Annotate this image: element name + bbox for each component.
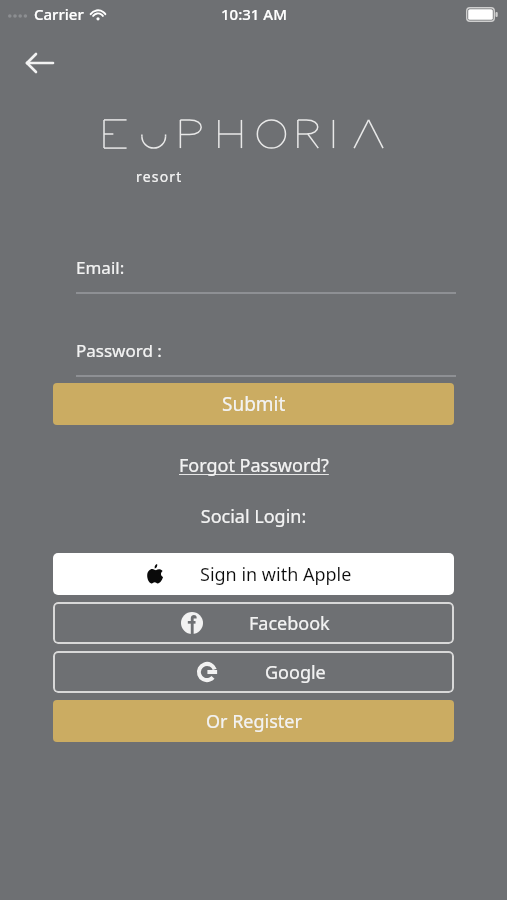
staticText: Password : xyxy=(76,339,162,362)
button[interactable]: Submit xyxy=(53,383,454,425)
staticText: Email: xyxy=(76,256,125,279)
staticText: Submit xyxy=(222,391,286,417)
button[interactable]: Sign in with Apple xyxy=(53,553,454,595)
staticText: Carrier xyxy=(34,4,84,24)
staticText: Forgot Password? xyxy=(179,453,329,478)
staticText: resort xyxy=(136,167,183,186)
staticText: Facebook xyxy=(249,611,330,636)
staticText: Or Register xyxy=(206,709,302,734)
button[interactable]: Or Register xyxy=(53,700,454,742)
button[interactable]: Facebook xyxy=(53,602,454,644)
staticText: 10:31 AM xyxy=(221,4,287,24)
staticText: Social Login: xyxy=(0,504,507,529)
button[interactable]: Back xyxy=(22,43,62,83)
button[interactable]: Forgot Password? xyxy=(150,450,357,480)
button[interactable]: Google xyxy=(53,651,454,693)
staticText: Sign in with Apple xyxy=(200,562,352,587)
staticText: Google xyxy=(265,660,326,685)
